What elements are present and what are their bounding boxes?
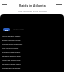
staticText: Statement released: [2, 67, 21, 70]
staticText: Raids in Atlanta: [19, 3, 46, 8]
staticText: Federal agents seen: [2, 55, 21, 58]
button[interactable]: Latest news: [13, 28, 25, 31]
staticText: Live updates from Google: [18, 9, 47, 12]
button[interactable]: Federal agents seen: [0, 55, 64, 59]
button[interactable]: Local leaders speak: [0, 35, 64, 39]
button[interactable]: City council votes: [0, 47, 64, 51]
staticText: Community responds: [2, 43, 23, 46]
staticText: Top: [5, 29, 9, 31]
staticText: What we know now: [2, 59, 21, 62]
button[interactable]: What we know now: [0, 59, 64, 63]
button[interactable]: Raids resume today: [0, 39, 64, 43]
staticText: Raids resume today: [2, 39, 21, 42]
button[interactable]: Top: [3, 28, 10, 31]
staticText: Families await news: [2, 63, 21, 66]
staticText: City council votes: [2, 47, 19, 50]
button[interactable]: Families await news: [0, 63, 64, 67]
staticText: Protests downtown: [2, 51, 21, 54]
button[interactable]: Community responds: [0, 43, 64, 47]
button[interactable]: Statement released: [0, 67, 64, 71]
staticText: Local leaders speak: [2, 35, 21, 38]
button[interactable]: Protests downtown: [0, 51, 64, 55]
